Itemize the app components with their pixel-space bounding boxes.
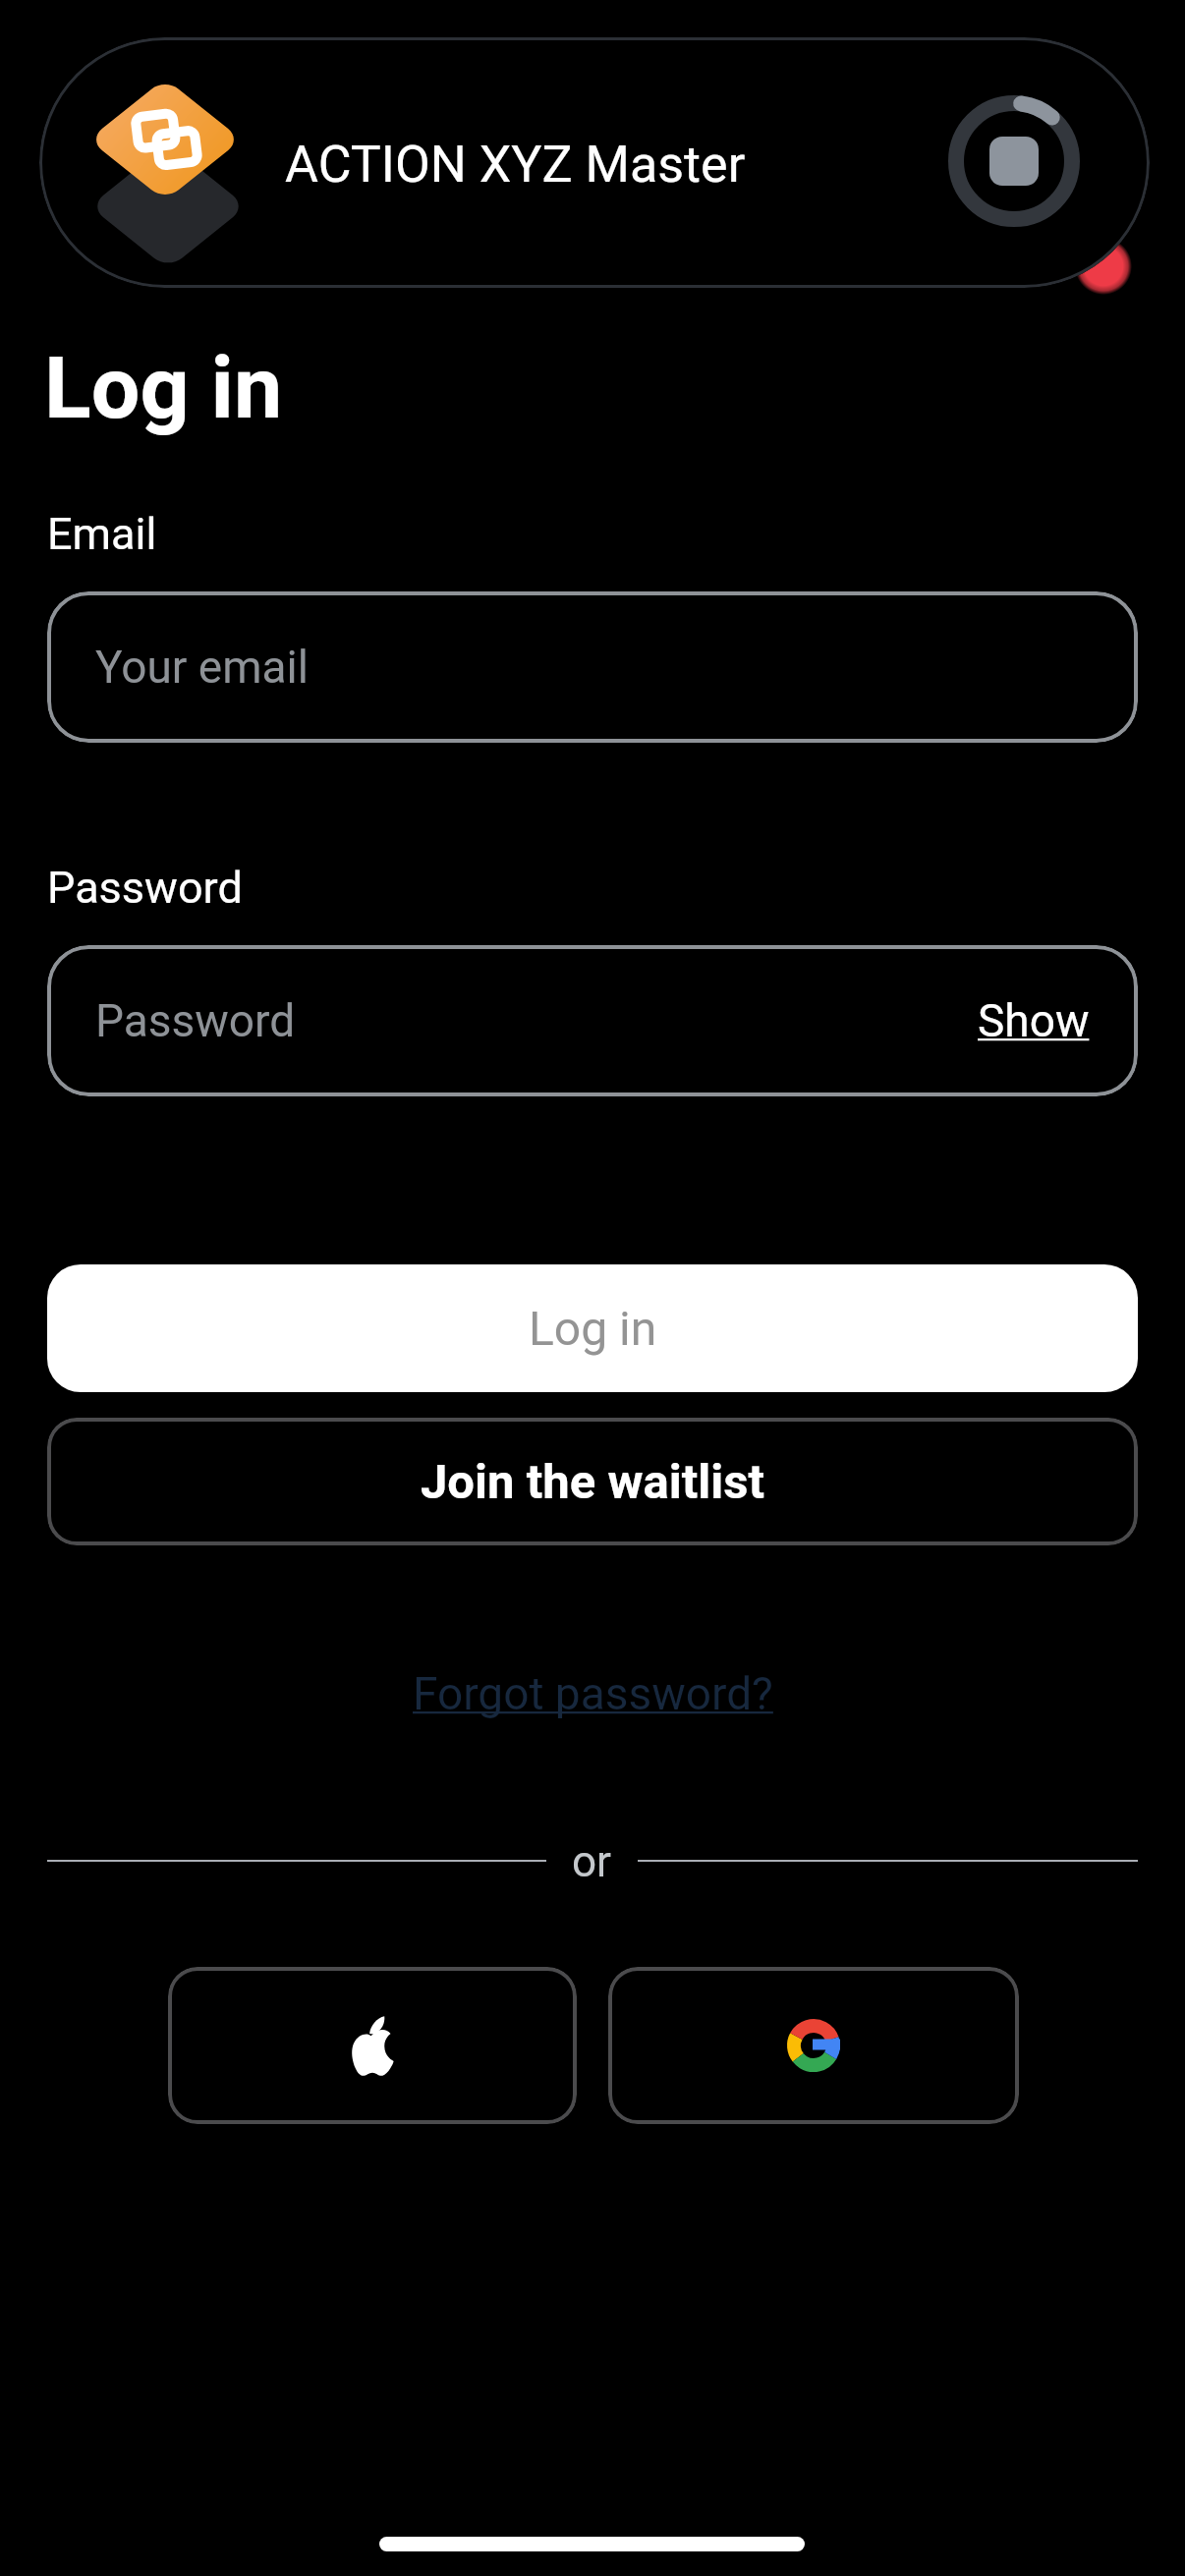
button[interactable]: Sign in with Google xyxy=(608,1967,1019,2124)
staticText: ACTION XYZ Master xyxy=(285,135,746,195)
button[interactable]: Log in xyxy=(47,1264,1138,1392)
staticText: Join the waitlist xyxy=(421,1454,764,1510)
staticText: Your email xyxy=(95,641,309,694)
staticText: Password xyxy=(47,862,243,914)
staticText: Password xyxy=(95,994,296,1047)
staticText: or xyxy=(572,1836,612,1885)
button[interactable]: Stop xyxy=(935,83,1093,240)
staticText: Log in xyxy=(529,1301,657,1356)
staticText: Show xyxy=(978,994,1090,1047)
button[interactable]: Your email xyxy=(47,591,1138,743)
button[interactable]: ACTION XYZ Master xyxy=(39,37,1150,288)
button[interactable]: Sign in with Apple xyxy=(168,1967,577,2124)
button[interactable]: Password xyxy=(47,945,1138,1096)
button[interactable]: Join the waitlist xyxy=(47,1418,1138,1545)
button[interactable]: Show xyxy=(978,994,1090,1047)
staticText: Email xyxy=(47,508,157,560)
button[interactable]: Forgot password? xyxy=(413,1667,773,1720)
staticText: Log in xyxy=(44,337,283,438)
